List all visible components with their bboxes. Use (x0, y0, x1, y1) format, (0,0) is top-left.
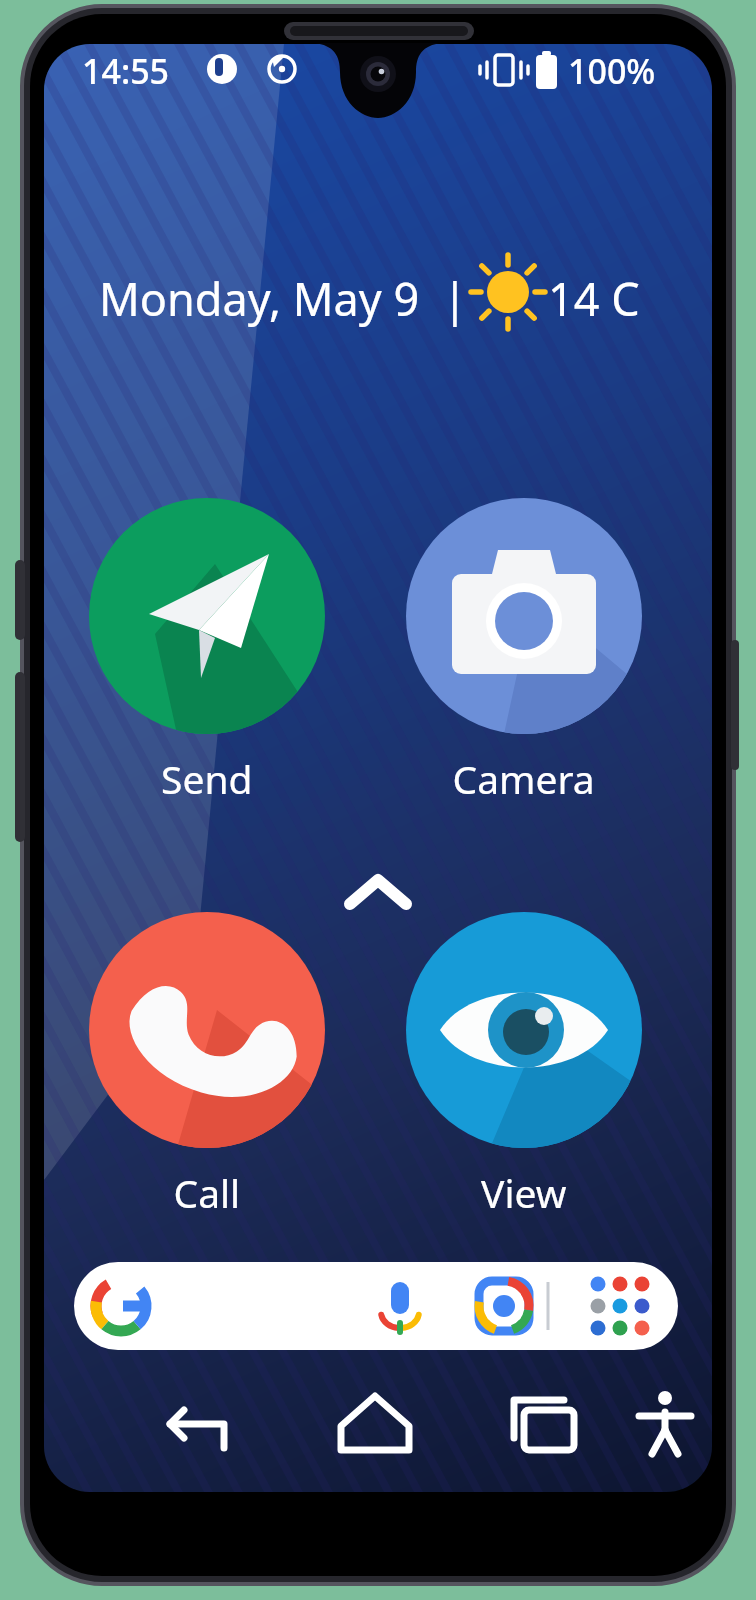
button[interactable]: Send (89, 498, 325, 798)
button[interactable]: Back (155, 1382, 265, 1480)
button[interactable]: Open app list (330, 862, 426, 914)
button[interactable]: Recent apps (484, 1382, 594, 1480)
button[interactable]: Accessibility (618, 1382, 712, 1480)
button[interactable]: Camera (406, 498, 642, 798)
button[interactable]: Google Search (74, 1262, 678, 1350)
button[interactable]: View (406, 912, 642, 1212)
button[interactable]: Home (320, 1382, 430, 1480)
button[interactable]: Call (89, 912, 325, 1212)
